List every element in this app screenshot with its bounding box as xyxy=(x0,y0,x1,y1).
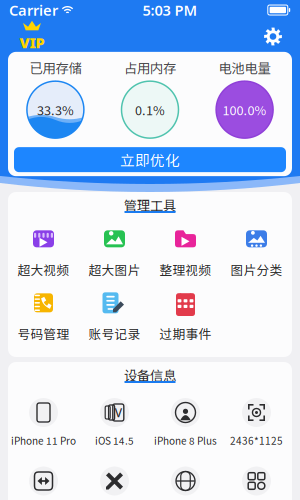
staticText: V xyxy=(115,404,122,420)
staticText: 设备信息 xyxy=(124,365,176,385)
button[interactable]: 图片分类 xyxy=(221,231,292,276)
button[interactable]: Transfer xyxy=(8,466,79,495)
button[interactable]: 号码管理 xyxy=(8,295,79,340)
staticText: 33.3% xyxy=(37,100,74,119)
button[interactable]: 超大视频 xyxy=(8,231,79,276)
staticText: 整理视频 xyxy=(159,260,211,279)
staticText: 电池电量 xyxy=(219,58,271,77)
staticText: iPhone 8 Plus xyxy=(154,433,217,448)
button[interactable]: 整理视频 xyxy=(150,231,221,276)
button[interactable]: Settings xyxy=(258,21,288,51)
button[interactable]: VIP xyxy=(12,21,52,51)
staticText: 账号记录 xyxy=(88,324,140,343)
staticText: 过期事件 xyxy=(159,324,211,343)
staticText: 已用存储 xyxy=(29,58,81,77)
staticText: 超大视频 xyxy=(17,260,69,279)
staticText: 图片分类 xyxy=(230,260,282,279)
staticText: 管理工具 xyxy=(124,195,176,215)
staticText: 5:03 PM xyxy=(142,0,197,20)
button[interactable]: 超大图片 xyxy=(79,231,150,276)
button[interactable]: Tools xyxy=(79,466,150,495)
staticText: 超大图片 xyxy=(88,260,140,279)
staticText: Carrier xyxy=(9,0,58,20)
staticText: 2436*1125 xyxy=(230,433,283,448)
staticText: iOS 14.5 xyxy=(95,433,134,448)
staticText: 0.1% xyxy=(135,100,165,119)
button[interactable]: Browser xyxy=(150,466,221,495)
staticText: 占用内存 xyxy=(124,58,176,77)
staticText: 号码管理 xyxy=(17,324,69,343)
staticText: 100.0% xyxy=(223,100,267,119)
button[interactable]: 立即优化 xyxy=(14,147,286,172)
button[interactable]: Apps xyxy=(221,466,292,495)
staticText: VIP xyxy=(19,33,44,52)
staticText: iPhone 11 Pro xyxy=(11,433,76,448)
button[interactable]: 账号记录 xyxy=(79,295,150,340)
button[interactable]: 过期事件 xyxy=(150,295,221,340)
staticText: 立即优化 xyxy=(120,149,180,170)
